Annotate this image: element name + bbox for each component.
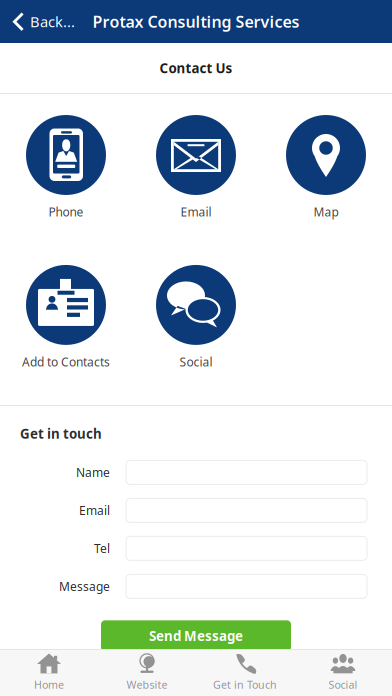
staticText: Message bbox=[59, 578, 110, 594]
staticText: Phone bbox=[48, 204, 83, 220]
staticText: Back... bbox=[30, 12, 75, 31]
staticText: Add to Contacts bbox=[22, 354, 110, 370]
staticText: Contact Us bbox=[159, 59, 232, 77]
staticText: Tel bbox=[94, 540, 110, 556]
staticText: Social bbox=[328, 677, 357, 692]
button[interactable]: Send Message bbox=[101, 620, 291, 651]
button[interactable]: Social bbox=[131, 265, 261, 370]
staticText: Get in Touch bbox=[213, 677, 277, 692]
button[interactable]: Phone bbox=[1, 115, 131, 220]
staticText: Protax Consulting Services bbox=[92, 11, 299, 32]
button[interactable]: Back... bbox=[0, 0, 85, 43]
button[interactable]: Home bbox=[0, 649, 98, 696]
button[interactable]: Social bbox=[294, 649, 392, 696]
staticText: Email bbox=[79, 502, 110, 518]
staticText: Name bbox=[76, 464, 110, 480]
staticText: Email bbox=[180, 204, 211, 220]
button[interactable]: Add to Contacts bbox=[1, 265, 131, 370]
button[interactable]: Website bbox=[98, 649, 196, 696]
button[interactable]: Map bbox=[261, 115, 391, 220]
button[interactable]: Email bbox=[131, 115, 261, 220]
staticText: Map bbox=[313, 204, 338, 220]
staticText: Website bbox=[126, 677, 167, 692]
staticText: Social bbox=[179, 354, 212, 370]
button[interactable]: Get in Touch bbox=[196, 649, 294, 696]
staticText: Send Message bbox=[149, 627, 243, 645]
staticText: Home bbox=[34, 677, 64, 692]
staticText: Get in touch bbox=[20, 425, 102, 442]
